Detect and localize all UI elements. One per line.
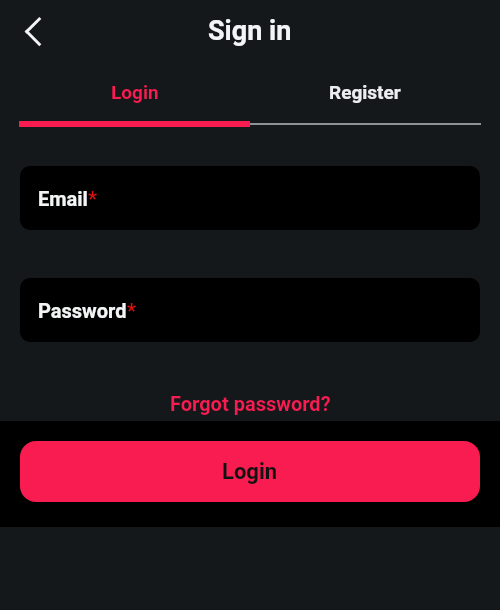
staticText: Login [222, 459, 278, 485]
staticText: * [88, 187, 98, 210]
button[interactable]: Register [250, 62, 480, 121]
staticText: Forgot password? [170, 392, 331, 415]
button[interactable]: Email [20, 166, 480, 230]
button[interactable] [15, 11, 55, 51]
staticText: Password [38, 299, 127, 322]
staticText: Sign in [208, 15, 292, 47]
button[interactable]: Login [20, 62, 250, 121]
staticText: Register [329, 81, 401, 103]
staticText: Login [111, 81, 159, 103]
staticText: Email [38, 187, 88, 210]
button[interactable]: Forgot password? [170, 392, 331, 415]
staticText: * [127, 299, 137, 322]
button[interactable]: Login [20, 441, 480, 502]
button[interactable]: Password [20, 278, 480, 342]
